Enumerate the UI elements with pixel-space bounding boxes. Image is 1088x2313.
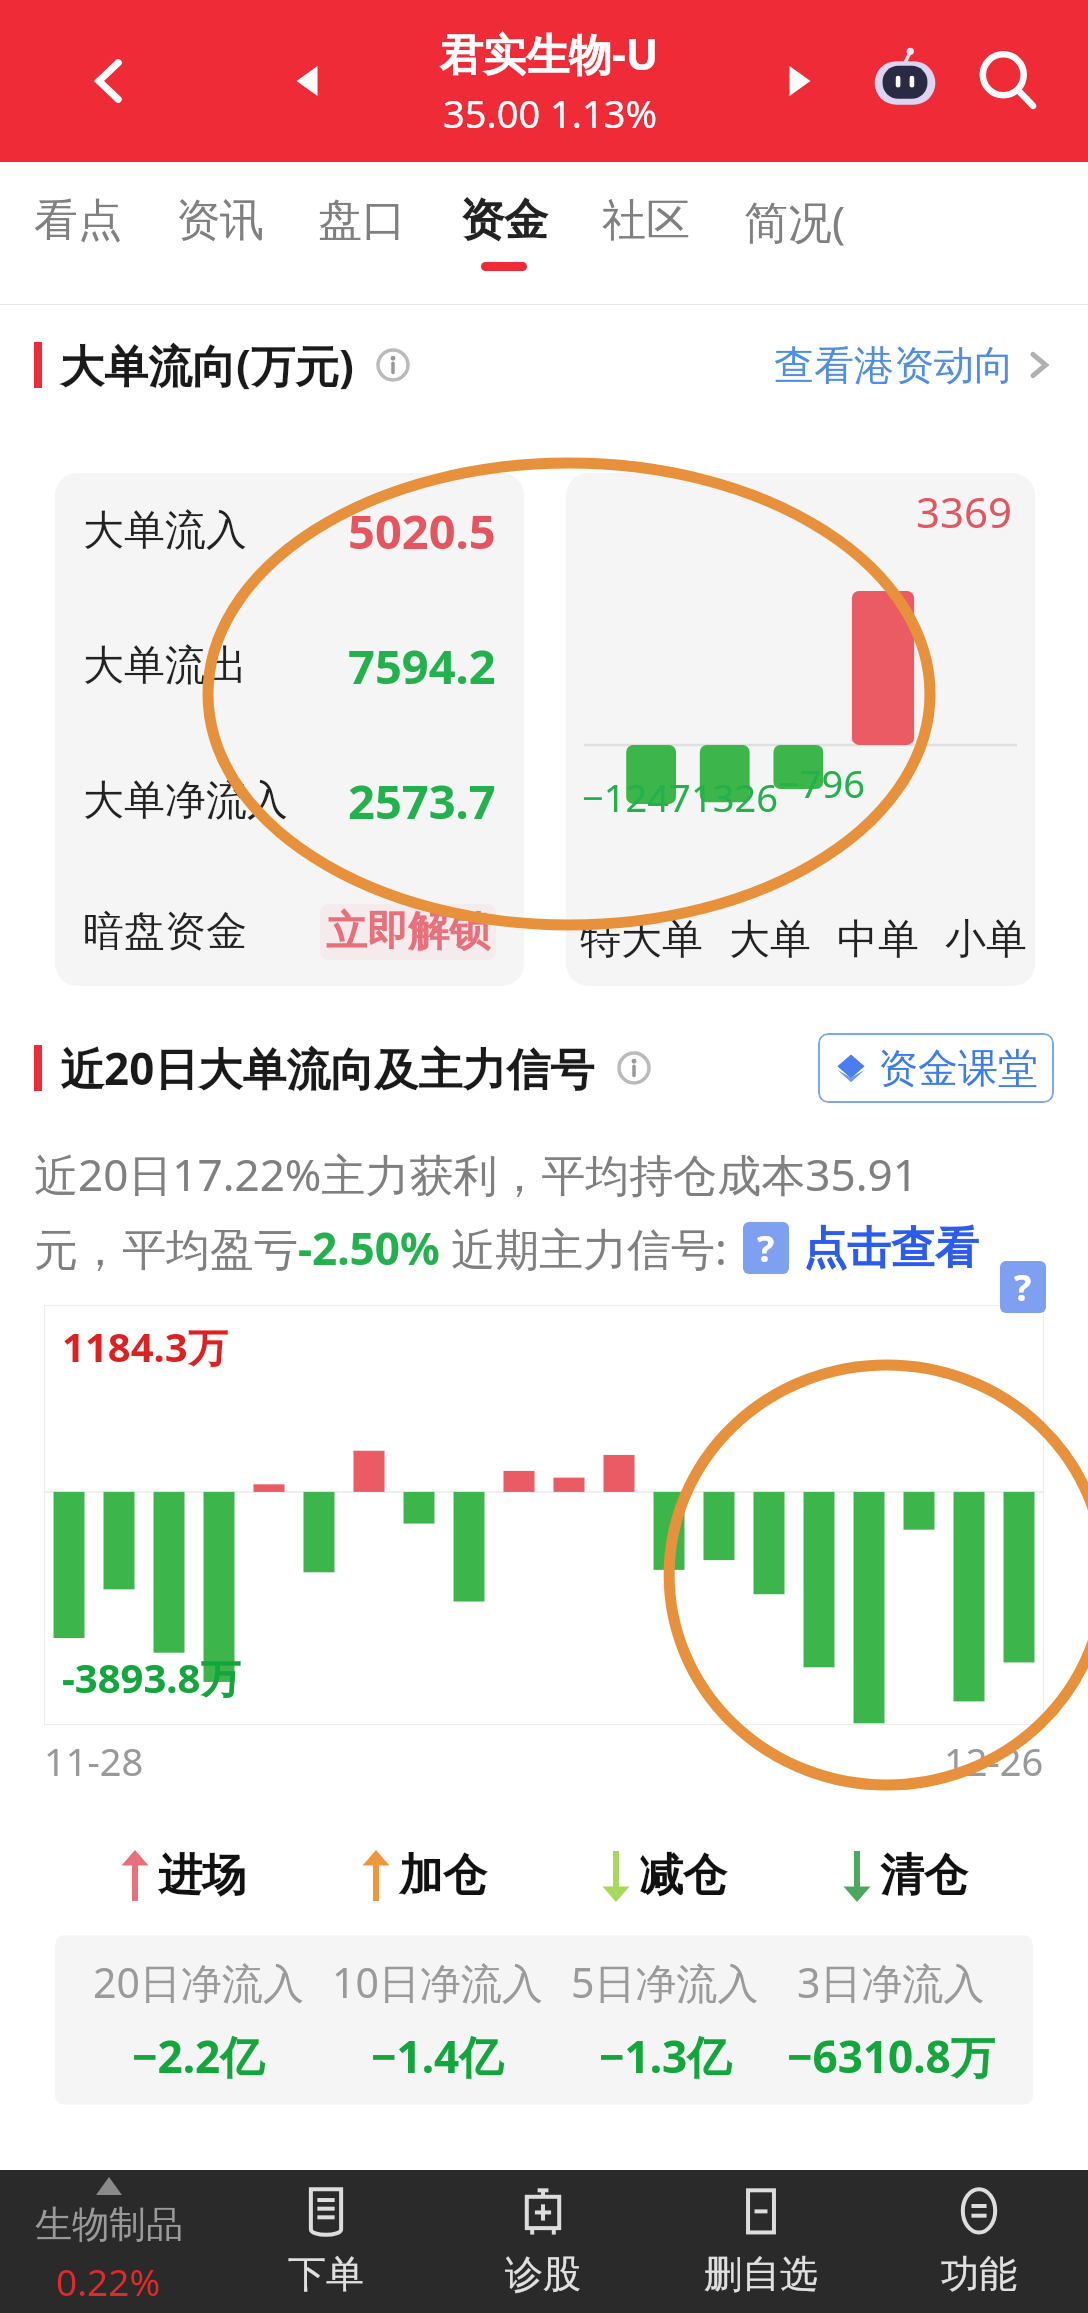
button[interactable]: 社区 xyxy=(602,162,690,302)
staticText: 大单 xyxy=(729,914,811,966)
staticText: 10日净流入 xyxy=(332,1954,543,2010)
staticText: 君实生物-U xyxy=(440,24,659,83)
button[interactable]: Back xyxy=(70,41,150,121)
staticText: 11-28 xyxy=(44,1735,144,1787)
staticText: 看点 xyxy=(34,193,122,248)
button[interactable]: 删自选 xyxy=(652,2170,870,2313)
staticText: 盘口 xyxy=(318,193,406,248)
staticText: 社区 xyxy=(602,193,690,248)
button[interactable]: 功能 xyxy=(870,2170,1088,2313)
button[interactable]: 3369 xyxy=(566,473,1035,986)
staticText: 1326 xyxy=(691,771,778,823)
staticText: 5日净流入 xyxy=(571,1954,759,2010)
staticText: 近20日大单流向及主力信号 xyxy=(60,1038,595,1098)
button[interactable]: 资金 xyxy=(460,162,548,302)
button[interactable]: 20日净流入 xyxy=(55,1935,1033,2105)
button[interactable]: 简况( xyxy=(744,162,846,302)
button[interactable]: AI assistant xyxy=(862,38,948,124)
staticText: 2573.7 xyxy=(348,769,496,833)
staticText: 暗盘资金 xyxy=(83,906,247,958)
button[interactable]: 立即解锁 xyxy=(326,906,490,958)
staticText: 12-26 xyxy=(944,1735,1044,1787)
staticText: 资讯 xyxy=(176,193,264,248)
staticText: 35.00 1.13% xyxy=(443,87,657,139)
staticText: −796 xyxy=(778,757,865,809)
staticText: 清仓 xyxy=(880,1848,968,1903)
staticText: 大单流出 xyxy=(83,640,247,692)
staticText: −2.2亿 xyxy=(132,2026,265,2086)
staticText: −1.4亿 xyxy=(371,2026,504,2086)
staticText: 近20日17.22%主力获利，平均持仓成本35.91 xyxy=(34,1144,918,1204)
staticText: ? xyxy=(1014,1263,1032,1312)
button[interactable]: 盘口 xyxy=(318,162,406,302)
staticText: 20日净流入 xyxy=(93,1954,304,2010)
button[interactable]: Search xyxy=(962,36,1052,126)
button[interactable]: Next stock xyxy=(762,46,832,116)
staticText: 大单流入 xyxy=(83,505,247,557)
staticText: 资金课堂 xyxy=(878,1043,1038,1093)
staticText: −1247 xyxy=(582,771,691,823)
staticText: 1184.3万 xyxy=(62,1319,228,1374)
staticText: 功能 xyxy=(941,2250,1017,2298)
button[interactable]: 生物制品 xyxy=(0,2177,217,2306)
staticText: 诊股 xyxy=(505,2250,581,2298)
button[interactable]: 看点 xyxy=(34,162,122,302)
staticText: 资金 xyxy=(460,193,548,248)
staticText: 下单 xyxy=(288,2250,364,2298)
button[interactable]: Previous stock xyxy=(275,46,345,116)
staticText: 生物制品 xyxy=(35,2201,183,2248)
staticText: −1.3亿 xyxy=(599,2026,732,2086)
staticText: 5020.5 xyxy=(348,499,496,563)
staticText: 立即解锁 xyxy=(326,906,490,958)
staticText: −6310.8万 xyxy=(787,2026,995,2086)
staticText: 大单净流入 xyxy=(83,775,288,827)
button[interactable]: 查看港资动向 xyxy=(774,340,1054,390)
staticText: 3日净流入 xyxy=(797,1954,985,2010)
button[interactable]: 大单流入 xyxy=(55,473,524,986)
button[interactable]: 1184.3万 xyxy=(44,1305,1044,1725)
staticText: 3369 xyxy=(916,483,1013,540)
staticText: 元，平均盈亏-2.50% 近期主力信号: xyxy=(34,1218,739,1278)
staticText: ? xyxy=(757,1224,775,1273)
staticText: 加仓 xyxy=(399,1848,487,1903)
staticText: 进场 xyxy=(158,1848,246,1903)
staticText: 7594.2 xyxy=(348,634,496,698)
button[interactable]: 加仓 xyxy=(361,1848,487,1903)
staticText: 简况( xyxy=(744,191,846,251)
button[interactable]: 清仓 xyxy=(842,1848,968,1903)
button[interactable]: 减仓 xyxy=(601,1848,727,1903)
staticText: 查看港资动向 xyxy=(774,340,1014,390)
button[interactable]: 资讯 xyxy=(176,162,264,302)
staticText: 小单 xyxy=(945,914,1027,966)
staticText: 减仓 xyxy=(639,1848,727,1903)
staticText: 中单 xyxy=(837,914,919,966)
staticText: 大单流向(万元) xyxy=(60,335,354,395)
staticText: 特大单 xyxy=(580,914,703,966)
staticText: -3893.8万 xyxy=(62,1650,241,1705)
button[interactable]: 资金课堂 xyxy=(834,1043,1038,1093)
button[interactable]: 下单 xyxy=(217,2170,434,2313)
button[interactable]: 诊股 xyxy=(434,2170,652,2313)
staticText: 删自选 xyxy=(704,2250,818,2298)
button[interactable]: 点击查看 xyxy=(803,1221,979,1276)
button[interactable]: 进场 xyxy=(120,1848,246,1903)
staticText: 0.22% xyxy=(56,2256,161,2306)
